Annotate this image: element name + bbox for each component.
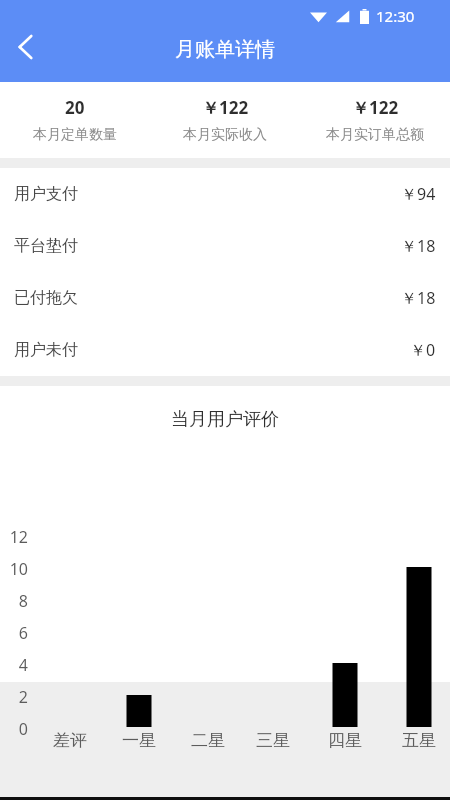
staticText: 10 [0,558,28,580]
staticText: 用户未付 [14,340,78,360]
staticText: 五星 [389,730,449,751]
staticText: 三星 [243,730,303,751]
staticText: 四星 [315,730,375,751]
staticText: 用户支付 [14,184,78,204]
button[interactable]: 20 [0,82,150,158]
staticText: 平台垫付 [14,236,78,256]
staticText: ￥0 [410,339,436,361]
staticText: 20 [65,96,85,119]
button[interactable]: 平台垫付 [0,220,450,272]
staticText: ￥94 [401,183,436,205]
staticText: 月账单详情 [0,37,450,62]
staticText: ￥18 [401,287,436,309]
button[interactable]: Back [2,24,48,70]
staticText: 二星 [178,730,238,751]
staticText: 已付拖欠 [14,288,78,308]
staticText: 12 [0,526,28,548]
staticText: ￥122 [352,96,399,119]
staticText: 6 [0,622,28,644]
staticText: 8 [0,590,28,612]
staticText: 一星 [109,730,169,751]
staticText: 4 [0,654,28,676]
button[interactable]: 用户未付 [0,324,450,376]
button[interactable]: 已付拖欠 [0,272,450,324]
staticText: 本月实订单总额 [326,126,424,144]
staticText: ￥18 [401,235,436,257]
button[interactable]: ￥122 [300,82,450,158]
staticText: 本月实际收入 [183,126,267,144]
staticText: 12:30 [376,6,415,26]
staticText: 2 [0,686,28,708]
staticText: 当月用户评价 [0,408,450,431]
staticText: ￥122 [202,96,249,119]
staticText: 差评 [40,730,100,751]
button[interactable]: 用户支付 [0,168,450,220]
staticText: 本月定单数量 [33,126,117,144]
staticText: 0 [0,718,28,740]
button[interactable]: ￥122 [150,82,300,158]
